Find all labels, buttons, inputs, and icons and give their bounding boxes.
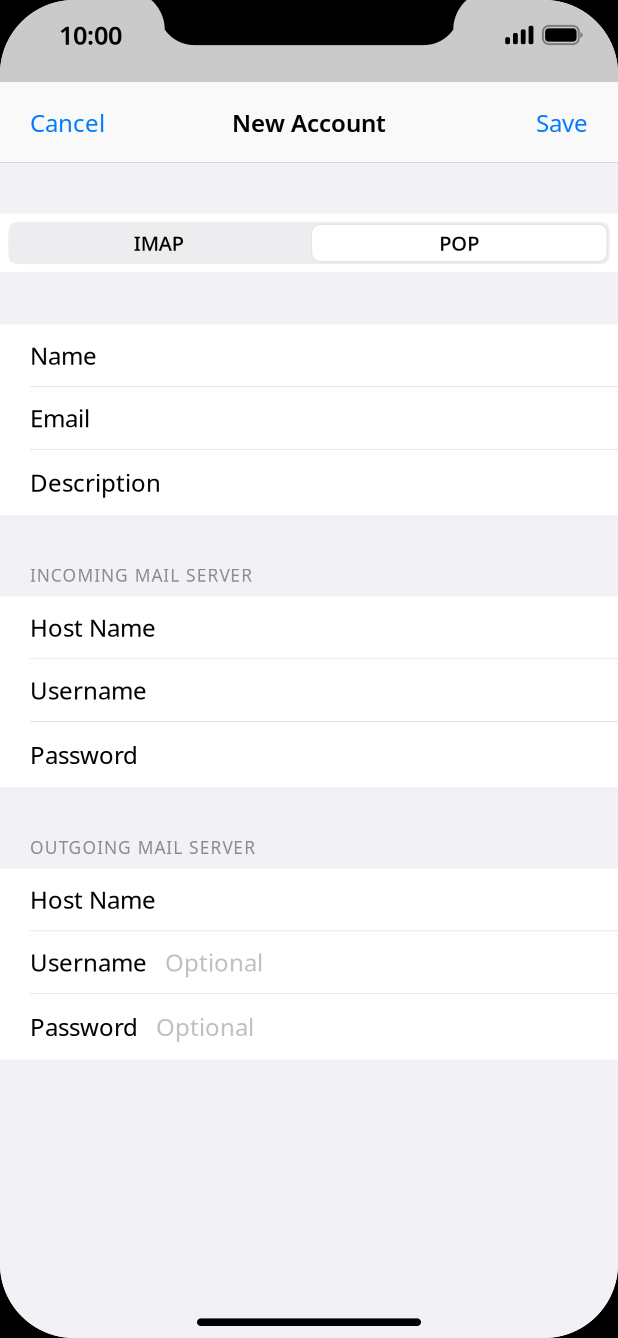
staticText: Host Name <box>30 884 156 915</box>
staticText: Password <box>30 739 138 771</box>
button[interactable]: POP <box>312 224 607 262</box>
button[interactable]: Description <box>0 450 618 515</box>
button[interactable]: Username <box>0 931 618 994</box>
staticText: Password <box>30 1011 138 1043</box>
button[interactable]: Name <box>0 324 618 387</box>
button[interactable]: IMAP <box>8 224 309 262</box>
staticText: Email <box>30 402 90 434</box>
staticText: Cancel <box>30 107 105 139</box>
button[interactable]: Host Name <box>0 869 618 931</box>
staticText: Username <box>30 674 147 706</box>
button[interactable]: Email <box>0 387 618 450</box>
staticText: INCOMING MAIL SERVER <box>30 564 252 587</box>
staticText: POP <box>439 230 479 256</box>
staticText: OUTGOING MAIL SERVER <box>30 836 255 859</box>
staticText: 10:00 <box>59 18 122 52</box>
staticText: IMAP <box>134 230 184 256</box>
staticText: Host Name <box>30 611 156 643</box>
button[interactable]: Cancel <box>30 97 105 149</box>
button[interactable]: Username <box>0 659 618 722</box>
staticText: Name <box>30 339 97 371</box>
button[interactable]: Password <box>0 994 618 1059</box>
staticText: Username <box>30 946 147 978</box>
staticText: Optional <box>156 1011 254 1043</box>
staticText: Optional <box>165 946 263 978</box>
staticText: Description <box>30 467 161 498</box>
button[interactable]: Save <box>536 97 588 149</box>
button[interactable]: Password <box>0 722 618 787</box>
button[interactable]: Host Name <box>0 597 618 659</box>
staticText: New Account <box>232 107 386 139</box>
staticText: Save <box>536 107 588 139</box>
